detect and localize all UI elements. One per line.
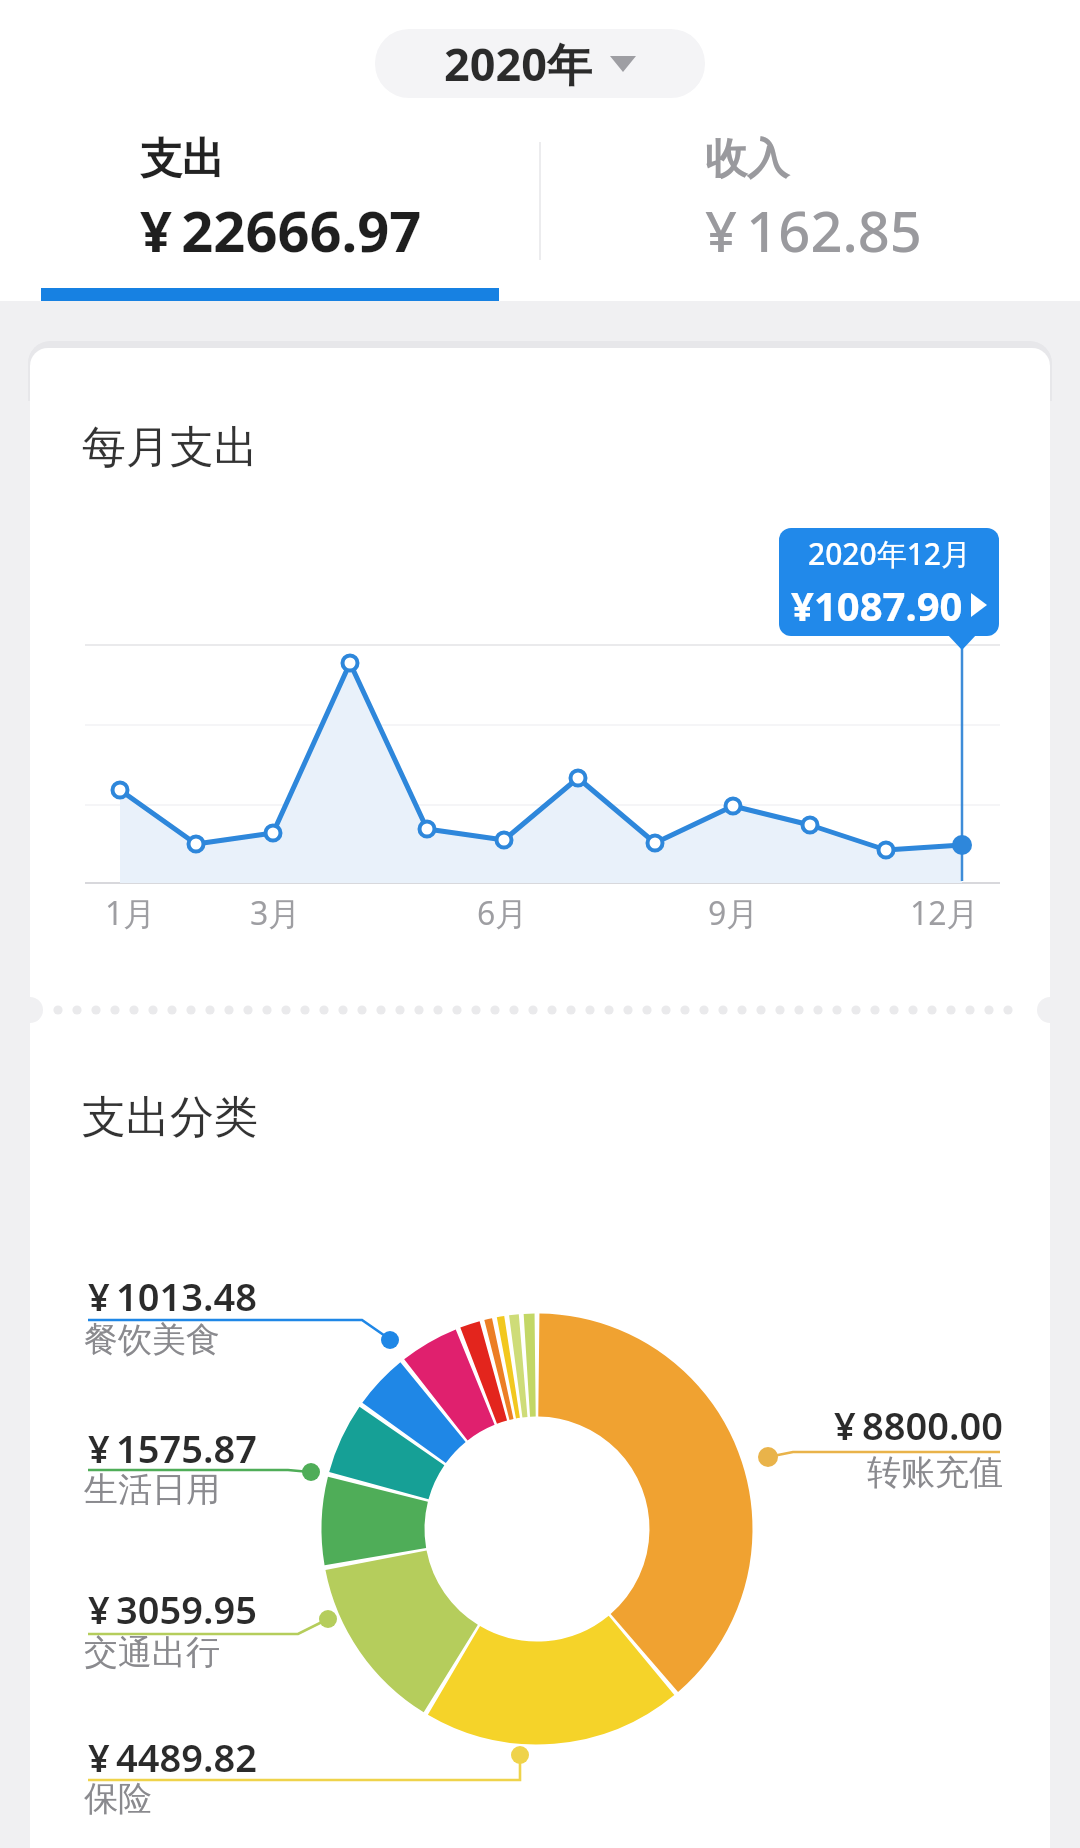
staticText: ¥ 162.85 (705, 192, 922, 268)
staticText: 1月 (105, 891, 156, 935)
staticText: 转账充值 (867, 1451, 1003, 1494)
button[interactable]: 2020年 (375, 29, 705, 98)
staticText: 餐饮美食 (84, 1318, 220, 1361)
staticText: ¥ 8800.00 (834, 1399, 1003, 1451)
staticText: ¥ 22666.97 (140, 192, 422, 268)
staticText: ¥1087.90 (791, 578, 963, 632)
staticText: ¥ 4489.82 (88, 1731, 257, 1783)
staticText: 生活日用 (84, 1468, 220, 1511)
staticText: 支出 (140, 133, 224, 186)
staticText: 6月 (477, 891, 528, 935)
button[interactable]: 2020年12月 (779, 528, 999, 636)
staticText: 12月 (910, 891, 979, 935)
staticText: ¥ 1575.87 (88, 1422, 257, 1474)
staticText: 每月支出 (82, 420, 258, 475)
staticText: 2020年12月 (808, 533, 971, 574)
staticText: 3月 (250, 891, 301, 935)
button[interactable]: 支出 (140, 133, 422, 268)
staticText: 收入 (705, 133, 789, 186)
staticText: 2020年 (444, 33, 592, 94)
staticText: 保险 (84, 1777, 152, 1820)
staticText: 9月 (708, 891, 759, 935)
button[interactable]: 收入 (705, 133, 922, 268)
staticText: ¥ 3059.95 (88, 1583, 257, 1635)
staticText: 交通出行 (84, 1631, 220, 1674)
staticText: ¥ 1013.48 (88, 1270, 257, 1322)
staticText: 支出分类 (82, 1090, 258, 1145)
